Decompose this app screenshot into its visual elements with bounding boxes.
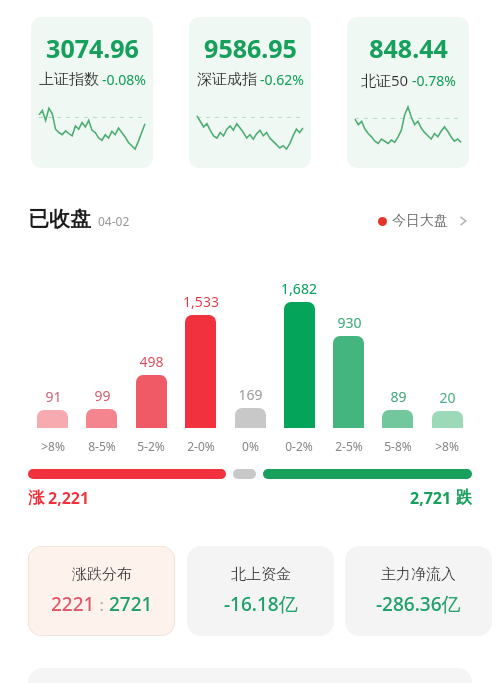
staticText: >8% bbox=[435, 438, 459, 454]
button[interactable] bbox=[333, 336, 364, 428]
button[interactable] bbox=[432, 411, 463, 428]
staticText: 涨跌分布 bbox=[72, 565, 132, 584]
staticText: 1,533 bbox=[183, 292, 219, 311]
staticText: 498 bbox=[139, 352, 164, 371]
staticText: 0% bbox=[242, 438, 259, 454]
staticText: 2-0% bbox=[187, 438, 215, 454]
staticText: 今日大盘 bbox=[392, 212, 448, 230]
staticText: -0.08% bbox=[102, 70, 146, 89]
staticText: 2721 bbox=[109, 591, 153, 617]
button[interactable]: 9586.95 bbox=[189, 17, 311, 168]
button[interactable] bbox=[284, 302, 315, 428]
staticText: 20 bbox=[439, 388, 456, 407]
button[interactable] bbox=[37, 410, 68, 428]
button[interactable]: 3074.96 bbox=[31, 17, 153, 168]
staticText: : bbox=[95, 593, 109, 616]
button[interactable]: 北上资金 bbox=[187, 546, 334, 636]
staticText: >8% bbox=[41, 438, 65, 454]
staticText: 04-02 bbox=[98, 213, 130, 229]
button[interactable] bbox=[235, 408, 266, 428]
button[interactable]: 涨跌分布 bbox=[28, 546, 175, 636]
staticText: 2,221 bbox=[48, 487, 90, 509]
button[interactable]: 已收盘 bbox=[28, 206, 130, 232]
staticText: 2,721 bbox=[410, 487, 452, 509]
staticText: 3074.96 bbox=[46, 31, 139, 65]
button[interactable] bbox=[185, 315, 216, 428]
staticText: 北上资金 bbox=[231, 565, 291, 584]
staticText: 5-2% bbox=[137, 438, 165, 454]
staticText: 9586.95 bbox=[204, 31, 297, 65]
staticText: -0.78% bbox=[412, 71, 456, 90]
staticText: 跌 bbox=[456, 488, 472, 508]
staticText: 5-8% bbox=[384, 438, 412, 454]
staticText: -286.36亿 bbox=[376, 591, 461, 617]
staticText: 涨 bbox=[28, 488, 44, 508]
staticText: 848.44 bbox=[369, 31, 448, 65]
staticText: 1,682 bbox=[281, 279, 317, 298]
staticText: 99 bbox=[94, 386, 111, 405]
staticText: 已收盘 bbox=[28, 206, 91, 232]
staticText: 上证指数 bbox=[39, 70, 99, 89]
staticText: 2-5% bbox=[335, 438, 363, 454]
staticText: 91 bbox=[45, 387, 62, 406]
staticText: 0-2% bbox=[285, 438, 313, 454]
button[interactable] bbox=[86, 409, 117, 428]
staticText: 89 bbox=[390, 387, 407, 406]
staticText: 深证成指 bbox=[197, 70, 257, 89]
button[interactable]: 今日大盘 bbox=[378, 212, 470, 230]
button[interactable] bbox=[136, 375, 167, 428]
staticText: 主力净流入 bbox=[381, 565, 456, 584]
staticText: 北证50 bbox=[361, 70, 409, 90]
button[interactable]: 848.44 bbox=[347, 17, 469, 168]
staticText: 2221 bbox=[51, 591, 95, 617]
staticText: -16.18亿 bbox=[224, 591, 298, 617]
staticText: 169 bbox=[238, 385, 263, 404]
staticText: 8-5% bbox=[88, 438, 116, 454]
button[interactable]: 主力净流入 bbox=[345, 546, 492, 636]
staticText: -0.62% bbox=[260, 70, 304, 89]
button[interactable] bbox=[382, 410, 413, 428]
staticText: 930 bbox=[337, 313, 362, 332]
